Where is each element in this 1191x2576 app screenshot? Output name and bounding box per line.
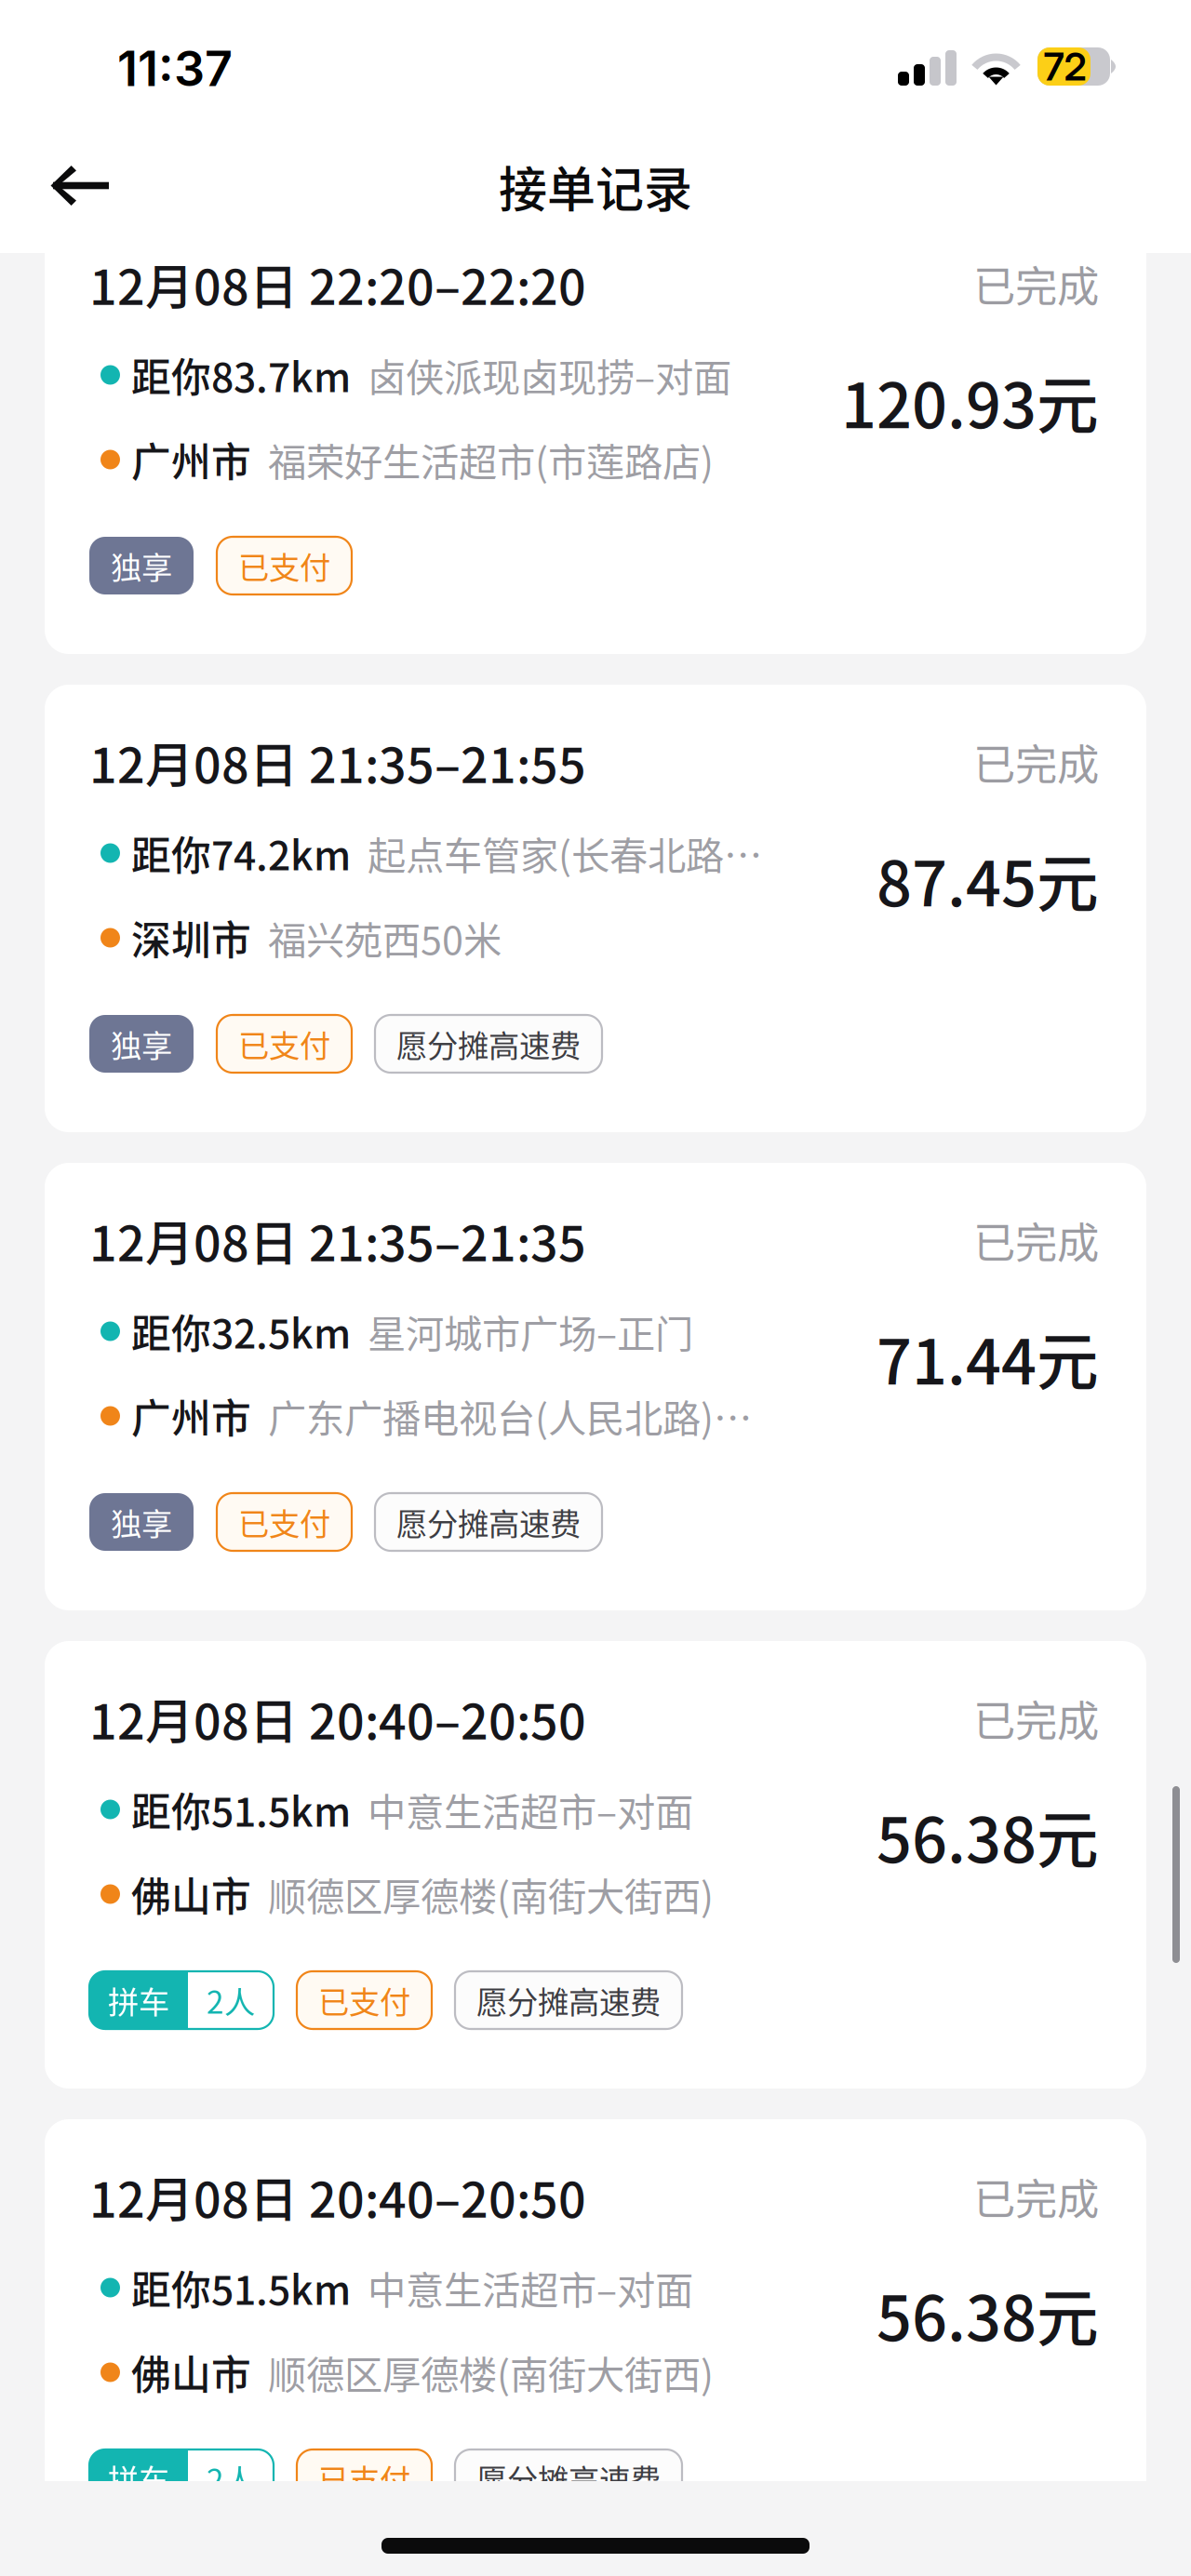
- staticText: 距你83.7km: [131, 346, 351, 404]
- staticText: 56.38元: [877, 1791, 1099, 1881]
- staticText: 87.45元: [877, 834, 1099, 924]
- staticText: 顺德区厚德楼(南街大街西): [268, 2344, 714, 2400]
- staticText: 佛山市: [131, 1865, 251, 1923]
- staticText: 2人: [207, 2456, 255, 2501]
- staticText: 2人: [207, 1978, 255, 2023]
- staticText: 距你51.5km: [131, 1781, 351, 1838]
- staticText: 120.93元: [841, 356, 1099, 446]
- staticText: 广州市: [131, 1387, 251, 1445]
- staticText: 12月08日 20:40–20:50: [89, 2161, 586, 2232]
- staticText: 距你51.5km: [131, 2259, 351, 2316]
- staticText: 广州市: [131, 431, 251, 488]
- staticText: 56.38元: [877, 2269, 1099, 2359]
- staticText: 距你74.2km: [131, 824, 351, 882]
- staticText: 12月08日 22:20–22:20: [89, 249, 586, 319]
- staticText: 已完成: [973, 1688, 1099, 1749]
- staticText: 已支付: [238, 543, 330, 588]
- button[interactable]: 12月08日 22:20–22:20: [45, 207, 1146, 654]
- button[interactable]: 12月08日 20:40–20:50: [45, 1641, 1146, 2089]
- staticText: 71.44元: [877, 1313, 1099, 1402]
- staticText: 距你32.5km: [131, 1303, 351, 1360]
- staticText: 已支付: [318, 2456, 410, 2501]
- staticText: 12月08日 21:35–21:55: [89, 727, 586, 797]
- staticText: 已支付: [238, 1500, 330, 1544]
- staticText: 独享: [111, 1500, 172, 1544]
- staticText: 星河城市广场–正门: [368, 1303, 693, 1359]
- staticText: 拼车: [108, 1978, 169, 2023]
- staticText: 广东广播电视台(人民北路)…: [268, 1388, 752, 1444]
- staticText: 12月08日 21:35–21:35: [89, 1205, 586, 1275]
- staticText: 独享: [111, 543, 172, 588]
- staticText: 已完成: [973, 731, 1099, 792]
- staticText: 已完成: [973, 1210, 1099, 1271]
- staticText: 拼车: [108, 2456, 169, 2501]
- staticText: 顺德区厚德楼(南街大街西): [268, 1866, 714, 1922]
- staticText: 起点车管家(长春北路…: [368, 825, 762, 881]
- staticText: 12月08日 20:40–20:50: [89, 1683, 586, 1753]
- staticText: 11:37: [117, 39, 233, 98]
- staticText: 愿分摊高速费: [396, 1021, 581, 1066]
- staticText: 已支付: [238, 1021, 330, 1066]
- staticText: 已完成: [973, 2166, 1099, 2227]
- staticText: 接单记录: [499, 151, 692, 221]
- staticText: 中意生活超市–对面: [368, 1782, 693, 1837]
- staticText: 福荣好生活超市(市莲路店): [268, 432, 714, 487]
- staticText: 愿分摊高速费: [396, 1500, 581, 1544]
- staticText: 独享: [111, 1021, 172, 1066]
- staticText: 福兴苑西50米: [268, 910, 502, 966]
- staticText: 已支付: [318, 1978, 410, 2023]
- staticText: 愿分摊高速费: [476, 2456, 661, 2501]
- staticText: 深圳市: [131, 909, 251, 966]
- button[interactable]: 12月08日 21:35–21:55: [45, 685, 1146, 1132]
- staticText: 愿分摊高速费: [476, 1978, 661, 2023]
- staticText: 佛山市: [131, 2344, 251, 2401]
- button[interactable]: Back: [49, 140, 161, 233]
- button[interactable]: 12月08日 20:40–20:50: [45, 2119, 1146, 2567]
- staticText: 72: [1044, 43, 1086, 90]
- staticText: 已完成: [973, 253, 1099, 314]
- staticText: 卤侠派现卤现捞–对面: [368, 347, 731, 403]
- button[interactable]: 12月08日 21:35–21:35: [45, 1163, 1146, 1610]
- staticText: 中意生活超市–对面: [368, 2260, 693, 2316]
